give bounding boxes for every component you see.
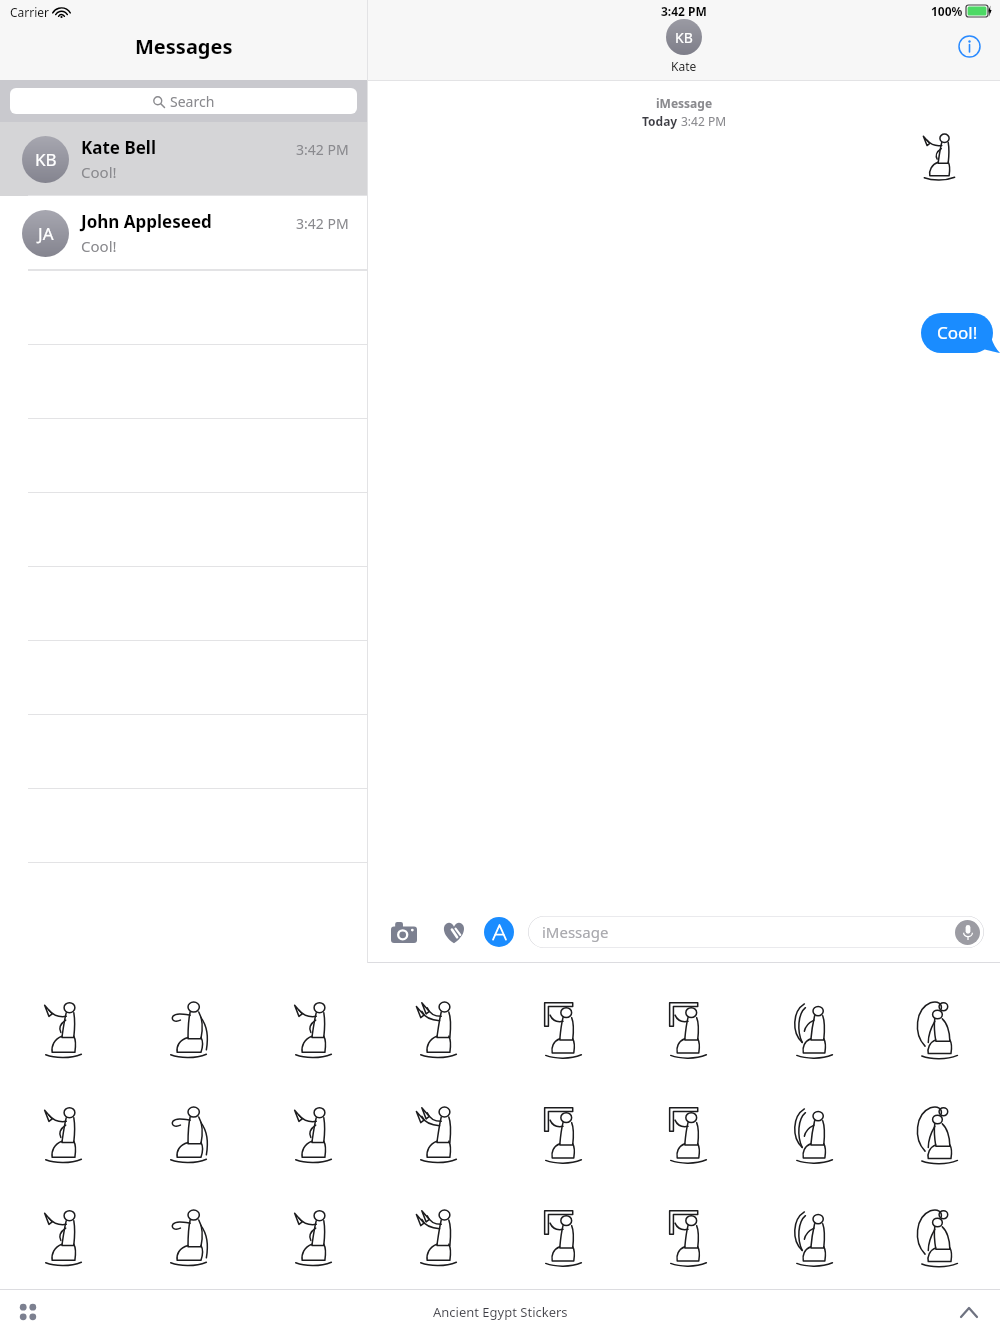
button[interactable]: iMessage [528,916,984,948]
button[interactable]: App drawer [10,1294,46,1330]
staticText: 100% [931,3,963,19]
button[interactable]: Sticker 11 [250,1082,375,1187]
staticText: 3:42 PM [681,113,727,129]
button[interactable]: App Store [484,917,514,947]
button[interactable]: Sticker 23 [750,1187,875,1289]
button[interactable]: Sticker 12 [375,1082,500,1187]
button[interactable]: JA [0,196,367,270]
staticText: iMessage [656,95,713,111]
staticText: 3:42 PM [661,3,707,19]
button[interactable]: Sticker 7 [750,977,875,1082]
staticText: 3:42 PM [296,214,349,233]
button[interactable]: Sticker 15 [750,1082,875,1187]
button[interactable]: KB [0,122,367,196]
staticText: Carrier [10,4,50,20]
button[interactable]: Sticker 19 [250,1187,375,1289]
staticText: Cool! [81,162,117,182]
button[interactable]: Sticker 18 [125,1187,250,1289]
button[interactable]: Sticker 20 [375,1187,500,1289]
staticText: 3:42 PM [296,140,349,159]
staticText: Ancient Egypt Stickers [433,1303,568,1321]
button[interactable]: Sticker 14 [625,1082,750,1187]
button[interactable]: Sticker 16 [875,1082,1000,1187]
button[interactable]: Sticker 21 [500,1187,625,1289]
button[interactable]: Sticker 9 [0,1082,125,1187]
button[interactable]: Sticker 17 [0,1187,125,1289]
button[interactable]: Sticker 4 [375,977,500,1082]
staticText: Search [170,92,215,111]
button[interactable]: Sticker 22 [625,1187,750,1289]
button[interactable]: Details [956,33,982,59]
staticText: KB [35,148,57,171]
staticText: Kate Bell [81,136,157,159]
button[interactable]: Sticker 3 [250,977,375,1082]
button[interactable]: Sticker 8 [875,977,1000,1082]
button[interactable]: Sticker 10 [125,1082,250,1187]
button[interactable]: Camera [384,912,424,952]
staticText: JA [38,222,54,245]
staticText: Cool! [81,236,117,256]
button[interactable]: Sticker 13 [500,1082,625,1187]
button[interactable]: Sticker 5 [500,977,625,1082]
staticText: Today [642,113,681,129]
button[interactable]: Search [10,88,357,114]
button[interactable]: KB [666,19,702,55]
button[interactable]: Sticker 6 [625,977,750,1082]
button[interactable]: Sticker 24 [875,1187,1000,1289]
button[interactable]: Dictate [955,920,980,945]
button[interactable]: Digital Touch [434,912,474,952]
staticText: John Appleseed [81,210,212,233]
button[interactable]: Expand [952,1295,986,1329]
button[interactable]: Sticker 1 [0,977,125,1082]
staticText: Messages [135,33,233,60]
staticText: Kate [671,58,697,74]
button[interactable]: Cool! [921,313,1000,353]
button[interactable]: Sticker 2 [125,977,250,1082]
staticText: iMessage [542,922,609,942]
staticText: Cool! [937,321,978,344]
staticText: KB [675,28,693,47]
